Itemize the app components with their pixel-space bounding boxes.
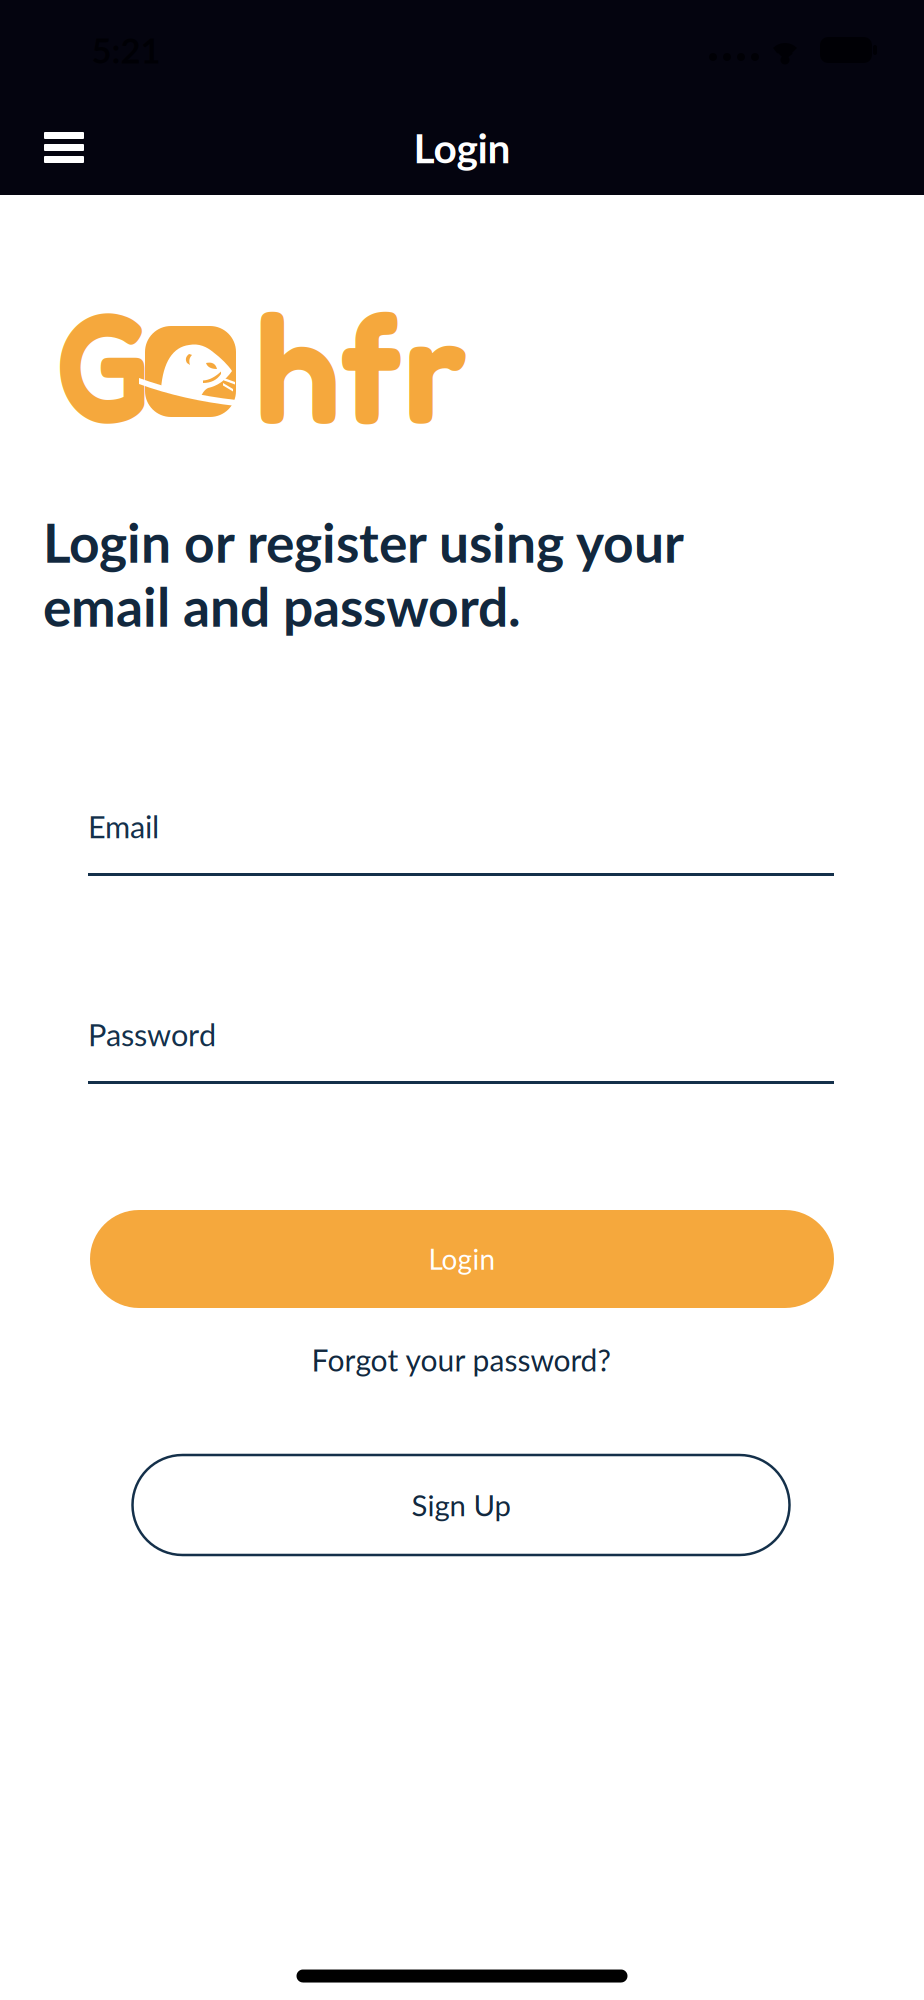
staticText: Login: [413, 123, 510, 172]
button[interactable]: Forgot your password?: [311, 1342, 610, 1378]
staticText: Forgot your password?: [311, 1342, 610, 1378]
button[interactable]: [36, 124, 92, 171]
button[interactable]: Password: [88, 1016, 834, 1086]
button[interactable]: Login: [90, 1210, 834, 1308]
staticText: Email: [88, 808, 159, 845]
staticText: 5:21: [91, 29, 160, 71]
staticText: hfr: [255, 272, 468, 459]
staticText: G: [41, 270, 152, 457]
staticText: Sign Up: [411, 1487, 510, 1523]
staticText: Login or register using your email and p…: [43, 510, 684, 638]
button[interactable]: Email: [88, 808, 834, 878]
staticText: Login: [428, 1242, 495, 1276]
button[interactable]: Sign Up: [132, 1455, 789, 1555]
staticText: Password: [88, 1016, 216, 1053]
